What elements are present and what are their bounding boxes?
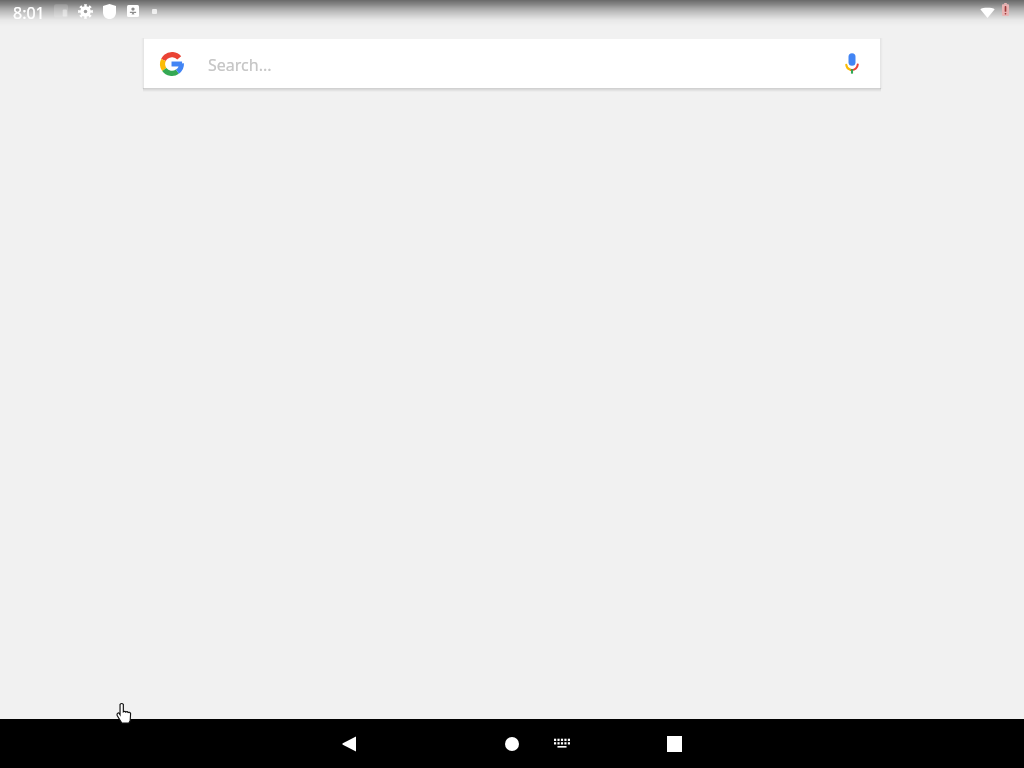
staticText: Search... [208, 54, 272, 76]
button[interactable]: Recent apps [650, 719, 698, 768]
button[interactable]: Search... [144, 39, 880, 88]
button[interactable]: Keyboard [538, 719, 586, 768]
staticText: 8:01 [13, 2, 45, 24]
button[interactable]: Back [325, 719, 373, 768]
button[interactable]: Home [488, 719, 536, 768]
button[interactable]: Voice search [838, 49, 866, 77]
